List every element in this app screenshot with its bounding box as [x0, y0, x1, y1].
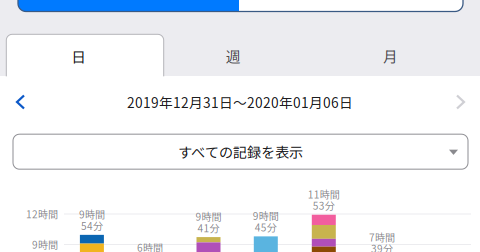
staticText: 6時間 — [137, 240, 163, 252]
staticText: 45分 — [255, 220, 277, 234]
staticText: 9時間 — [79, 207, 105, 221]
staticText: 9時間 — [195, 209, 221, 224]
button[interactable]: Next week — [442, 87, 478, 117]
staticText: 7時間 — [369, 230, 395, 244]
staticText: 39分 — [371, 241, 393, 252]
staticText: 38分 — [139, 251, 161, 252]
button[interactable]: すべての記録を表示 — [13, 134, 468, 169]
staticText: 週 — [226, 45, 241, 67]
button[interactable]: 月 — [316, 35, 466, 77]
staticText: 54分 — [81, 218, 103, 233]
staticText: 11時間 — [308, 187, 340, 201]
staticText: 日 — [71, 45, 86, 67]
staticText: すべての記録を表示 — [178, 141, 303, 162]
button[interactable]: 日 — [4, 35, 154, 77]
staticText: 9時間 — [32, 237, 58, 252]
button[interactable]: Previous week — [2, 87, 38, 117]
staticText: 41分 — [197, 220, 219, 235]
staticText: 53分 — [313, 198, 335, 213]
staticText: 月 — [383, 45, 398, 67]
button[interactable]: 週 — [158, 35, 308, 77]
staticText: 9時間 — [253, 208, 279, 223]
staticText: 12時間 — [26, 206, 58, 221]
staticText: 2019年12月31日〜2020年01月06日 — [127, 92, 353, 112]
button[interactable] — [18, 0, 463, 11]
